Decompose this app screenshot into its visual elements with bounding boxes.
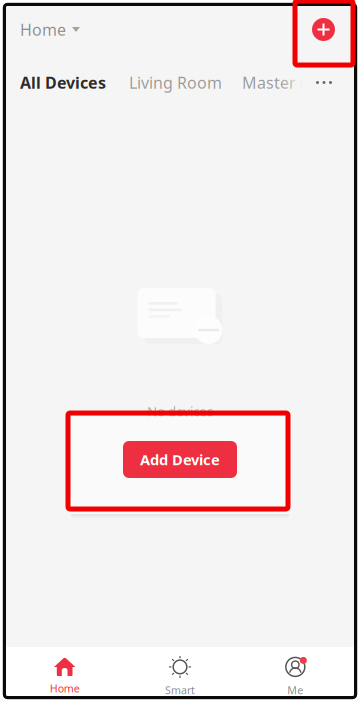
staticText: Living Room <box>129 72 222 93</box>
button[interactable]: More rooms <box>314 59 360 106</box>
button[interactable]: Add device <box>298 8 360 51</box>
staticText: All Devices <box>20 72 106 93</box>
staticText: No devices <box>147 402 213 420</box>
button[interactable]: Me <box>238 645 353 702</box>
staticText: Master Bedroom <box>242 72 360 93</box>
button[interactable]: Smart <box>122 645 238 702</box>
button[interactable]: Master Bedroom <box>242 72 360 93</box>
button[interactable]: Living Room <box>129 72 222 93</box>
staticText: Home <box>20 19 66 40</box>
button[interactable]: Home <box>0 7 90 52</box>
button[interactable]: Home <box>7 647 122 702</box>
staticText: Me <box>287 683 303 697</box>
button[interactable]: All Devices <box>20 72 106 93</box>
staticText: Home <box>50 681 80 695</box>
staticText: Smart <box>165 683 195 697</box>
staticText: Add Device <box>140 450 220 469</box>
button[interactable]: Add Device <box>123 441 237 478</box>
